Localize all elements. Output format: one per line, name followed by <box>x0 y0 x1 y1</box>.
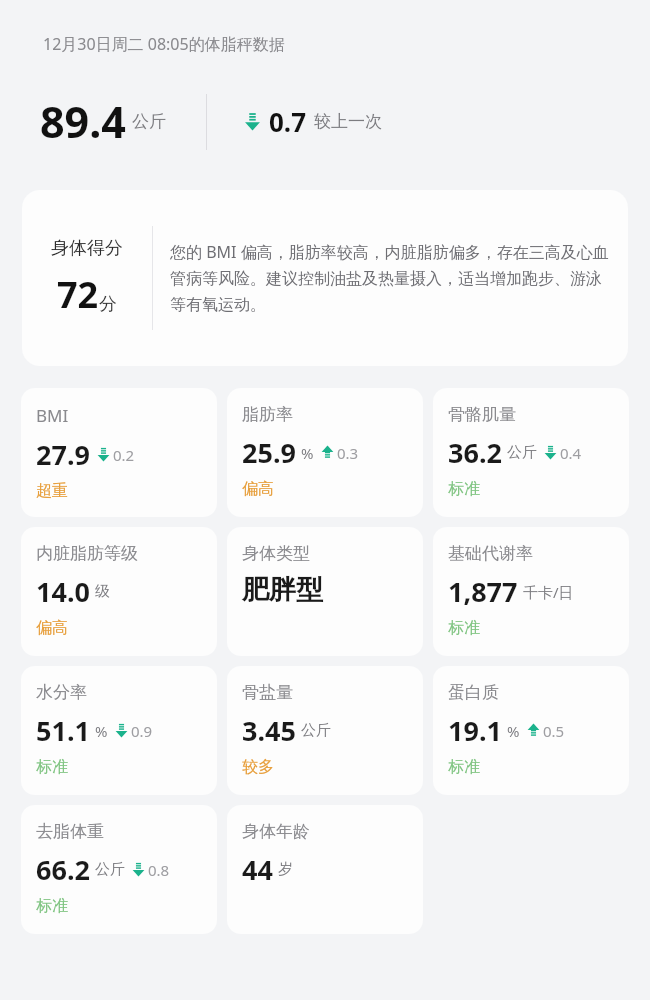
staticText: 标准 <box>36 896 68 916</box>
staticText: 44 <box>242 851 273 888</box>
staticText: 基础代谢率 <box>448 543 533 564</box>
staticText: 身体类型 <box>242 543 310 564</box>
staticText: 72 <box>57 270 99 319</box>
button[interactable]: 身体得分 <box>22 190 628 366</box>
staticText: 标准 <box>448 757 480 777</box>
button[interactable]: 基础代谢率 <box>433 527 629 656</box>
staticText: 66.2 <box>36 851 90 888</box>
staticText: 级 <box>95 582 110 601</box>
staticText: 超重 <box>36 481 68 501</box>
staticText: 3.45 <box>242 712 296 749</box>
staticText: 身体年龄 <box>242 821 310 842</box>
staticText: 标准 <box>36 757 68 777</box>
staticText: 身体得分 <box>51 237 123 260</box>
staticText: 12月30日周二 08:05的体脂秤数据 <box>43 33 285 55</box>
staticText: 公斤 <box>95 860 125 879</box>
staticText: 您的 BMI 偏高，脂肪率较高，内脏脂肪偏多，存在三高及心血管病等风险。建议控制… <box>170 241 614 315</box>
staticText: % <box>507 721 520 741</box>
staticText: 标准 <box>448 479 480 499</box>
staticText: 公斤 <box>132 111 166 132</box>
staticText: 脂肪率 <box>242 404 293 425</box>
staticText: 较上一次 <box>314 111 382 132</box>
staticText: 偏高 <box>36 618 68 638</box>
staticText: 内脏脂肪等级 <box>36 543 138 564</box>
staticText: 36.2 <box>448 434 502 471</box>
staticText: 公斤 <box>507 443 537 462</box>
staticText: 51.1 <box>36 712 90 749</box>
staticText: 0.2 <box>113 445 135 465</box>
staticText: 分 <box>99 293 117 316</box>
staticText: 0.7 <box>269 104 307 139</box>
staticText: 0.8 <box>148 860 170 880</box>
staticText: 水分率 <box>36 682 87 703</box>
staticText: 岁 <box>278 860 293 879</box>
staticText: 公斤 <box>301 721 331 740</box>
staticText: BMI <box>36 404 69 427</box>
staticText: 骨盐量 <box>242 682 293 703</box>
button[interactable]: 骨骼肌量 <box>433 388 629 517</box>
staticText: 0.9 <box>131 721 153 741</box>
staticText: 25.9 <box>242 434 296 471</box>
staticText: 27.9 <box>36 436 90 473</box>
button[interactable]: 水分率 <box>21 666 217 795</box>
button[interactable]: 内脏脂肪等级 <box>21 527 217 656</box>
button[interactable]: 脂肪率 <box>227 388 423 517</box>
staticText: % <box>95 721 108 741</box>
button[interactable]: 蛋白质 <box>433 666 629 795</box>
staticText: 千卡/日 <box>523 582 574 602</box>
staticText: 0.3 <box>337 443 359 463</box>
staticText: 肥胖型 <box>242 573 323 607</box>
button[interactable]: 身体类型 <box>227 527 423 656</box>
staticText: 较多 <box>242 757 274 777</box>
staticText: 89.4 <box>40 92 126 151</box>
staticText: 0.4 <box>560 443 582 463</box>
button[interactable]: 去脂体重 <box>21 805 217 934</box>
staticText: 标准 <box>448 618 480 638</box>
staticText: 去脂体重 <box>36 821 104 842</box>
button[interactable]: 骨盐量 <box>227 666 423 795</box>
staticText: 14.0 <box>36 573 90 610</box>
button[interactable]: BMI <box>21 388 217 517</box>
staticText: 0.5 <box>543 721 565 741</box>
staticText: 偏高 <box>242 479 274 499</box>
staticText: 骨骼肌量 <box>448 404 516 425</box>
staticText: 蛋白质 <box>448 682 499 703</box>
button[interactable]: 身体年龄 <box>227 805 423 934</box>
staticText: % <box>301 443 314 463</box>
staticText: 1,877 <box>448 573 518 610</box>
staticText: 19.1 <box>448 712 502 749</box>
